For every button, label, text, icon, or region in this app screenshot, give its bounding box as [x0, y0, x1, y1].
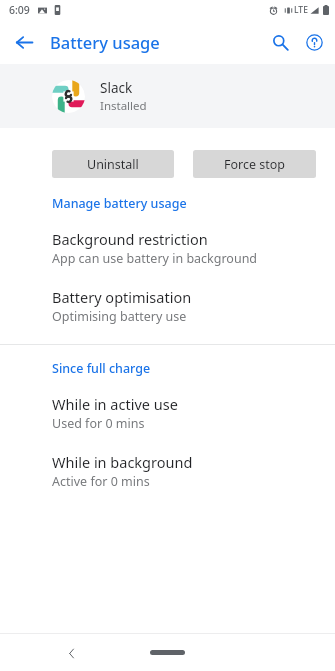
button[interactable]: Uninstall [52, 150, 174, 178]
button[interactable]: Background restriction [0, 218, 335, 276]
staticText: Used for 0 mins [52, 415, 145, 432]
staticText: While in active use [52, 394, 178, 414]
button[interactable]: Help [297, 25, 331, 59]
button[interactable]: While in background [0, 441, 335, 499]
button[interactable]: Search [263, 25, 297, 59]
staticText: While in background [52, 452, 193, 472]
button[interactable]: Force stop [193, 150, 316, 178]
button[interactable]: Back [56, 638, 86, 668]
staticText: Manage battery usage [52, 195, 187, 212]
button[interactable]: While in active use [0, 383, 335, 441]
staticText: App can use battery in background [52, 250, 258, 267]
staticText: Active for 0 mins [52, 473, 150, 490]
button[interactable]: Battery optimisation [0, 276, 335, 334]
button[interactable]: Navigate up [5, 23, 43, 61]
staticText: Slack [100, 79, 133, 97]
button[interactable]: Slack [0, 64, 335, 128]
staticText: 6:09 [9, 3, 30, 17]
button[interactable]: Home [150, 650, 185, 655]
staticText: LTE [294, 4, 308, 16]
staticText: Since full charge [52, 360, 151, 377]
staticText: Battery optimisation [52, 287, 192, 307]
staticText: Background restriction [52, 229, 208, 249]
staticText: Battery usage [50, 31, 160, 53]
staticText: Force stop [224, 156, 286, 173]
staticText: Installed [100, 98, 147, 114]
staticText: Optimising battery use [52, 308, 187, 325]
staticText: Uninstall [87, 156, 139, 173]
